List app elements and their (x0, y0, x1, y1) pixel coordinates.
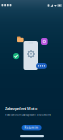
staticText: Zabezpečení Moto (5, 106, 37, 111)
staticText: Rozumím (25, 126, 39, 129)
staticText: Vaše centrum zabezpečení a soukromí (5, 113, 51, 116)
button[interactable]: Rozumím (22, 125, 42, 130)
